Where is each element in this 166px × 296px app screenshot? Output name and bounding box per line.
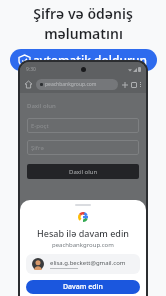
other: Add: [122, 82, 128, 88]
staticText: elisa.g.beckett@gmail.com: [50, 259, 126, 267]
button[interactable]: Daxil olun: [27, 164, 139, 179]
staticText: Şifrə: [31, 144, 44, 152]
staticText: avtomatik doldurun: [33, 52, 148, 68]
button[interactable]: Tabs: [131, 82, 137, 88]
staticText: Daxil olun: [69, 168, 98, 176]
staticText: Hesab ilə davam edin: [37, 227, 130, 239]
button[interactable]: elisa.g.beckett@gmail.com: [26, 254, 140, 274]
staticText: 9:30: [26, 66, 36, 73]
staticText: məlumatını: [44, 24, 123, 43]
button[interactable]: peachbankgroup.com: [36, 79, 118, 90]
other: Home: [25, 81, 32, 88]
staticText: peachbankgroup.com: [45, 81, 97, 88]
button[interactable]: avtomatik doldurun: [10, 49, 157, 71]
button[interactable]: Şifrə: [27, 140, 139, 155]
staticText: Şifrə və ödəniş: [33, 4, 133, 23]
button[interactable]: E-poçt: [27, 118, 139, 133]
button[interactable]: Davam edin: [26, 280, 140, 294]
staticText: E-poçt: [31, 122, 49, 130]
staticText: Daxil olun: [27, 102, 56, 110]
staticText: peachbankgroup.com: [52, 241, 114, 249]
button[interactable]: More options: [140, 82, 141, 87]
staticText: Davam edin: [63, 282, 103, 292]
